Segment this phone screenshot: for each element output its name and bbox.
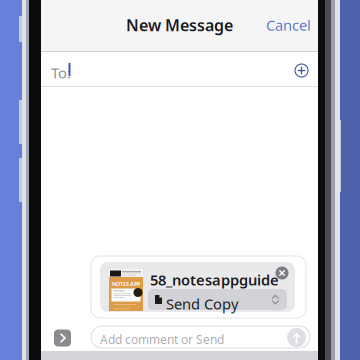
staticText: To: xyxy=(51,63,71,82)
button[interactable]: Add comment or Send xyxy=(91,326,310,348)
button[interactable]: Add contact xyxy=(288,52,316,87)
staticText: 58_notesappguide xyxy=(150,270,279,289)
button[interactable]: Cancel xyxy=(255,7,311,43)
staticText: Send Copy xyxy=(166,294,238,313)
staticText: New Message xyxy=(126,14,233,36)
button[interactable]: Remove attachment xyxy=(273,264,291,282)
button[interactable]: Send Copy xyxy=(148,289,287,310)
button[interactable]: Send xyxy=(286,327,307,348)
staticText: Cancel xyxy=(266,15,311,35)
staticText: Add comment or Send xyxy=(100,331,224,347)
staticText: NOTES APP xyxy=(112,280,140,288)
button[interactable]: Expand xyxy=(50,326,72,349)
